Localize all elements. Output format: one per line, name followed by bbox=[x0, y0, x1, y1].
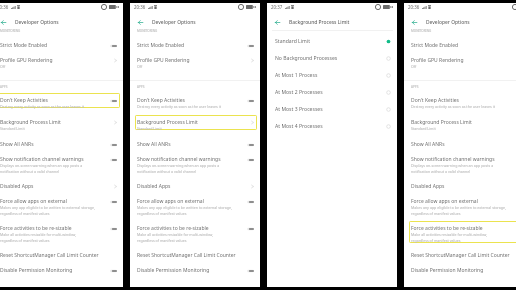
staticText: Show All ANRs bbox=[137, 141, 171, 148]
button[interactable]: Don't Keep Activities bbox=[0, 93, 123, 115]
staticText: Disable Permission Monitoring bbox=[0, 267, 73, 274]
staticText: Destroy every activity as soon as the us… bbox=[137, 104, 221, 109]
button[interactable]: Standard Limit bbox=[275, 33, 391, 50]
staticText: 20:36 bbox=[134, 4, 146, 10]
staticText: Off bbox=[411, 64, 417, 69]
staticText: Background Process Limit bbox=[0, 119, 61, 126]
staticText: Disable Permission Monitoring bbox=[137, 267, 210, 274]
staticText: Background Process Limit bbox=[137, 119, 198, 126]
button[interactable]: Back bbox=[412, 20, 417, 25]
button[interactable]: Back bbox=[275, 20, 280, 25]
staticText: APPS bbox=[411, 85, 419, 89]
button[interactable]: Background Process Limit bbox=[0, 115, 123, 137]
button[interactable]: Background Process Limit bbox=[404, 115, 516, 137]
button[interactable]: Back bbox=[1, 20, 6, 25]
staticText: Profile GPU Rendering bbox=[137, 57, 190, 64]
button[interactable]: Strict Mode Enabled bbox=[0, 38, 123, 53]
button[interactable]: Disable Permission Monitoring bbox=[0, 263, 123, 278]
staticText: Show notification channel warnings bbox=[411, 156, 495, 163]
button[interactable]: Profile GPU Rendering bbox=[0, 53, 123, 75]
staticText: Makes any app eligible to be written to … bbox=[411, 205, 506, 216]
staticText: Background Process Limit bbox=[411, 119, 472, 126]
button[interactable]: Background Process Limit bbox=[130, 115, 260, 137]
staticText: 20:37 bbox=[271, 4, 283, 10]
button[interactable]: Profile GPU Rendering bbox=[404, 53, 516, 75]
staticText: 20:36 bbox=[408, 4, 420, 10]
button[interactable]: Reset ShortcutManager Call Limit Counter bbox=[130, 248, 260, 263]
staticText: Reset ShortcutManager Call Limit Counter bbox=[411, 252, 510, 259]
button[interactable]: Strict Mode Enabled bbox=[130, 38, 260, 53]
button[interactable]: Strict Mode Enabled bbox=[404, 38, 516, 53]
button[interactable]: Don't Keep Activities bbox=[404, 93, 516, 115]
button[interactable]: At Most 1 Process bbox=[275, 67, 391, 84]
button[interactable]: Show notification channel warnings bbox=[130, 152, 260, 179]
button[interactable]: Force activities to be re-sizable bbox=[130, 221, 260, 248]
button[interactable]: Reset ShortcutManager Call Limit Counter bbox=[0, 248, 123, 263]
staticText: Developer Options bbox=[15, 19, 59, 26]
staticText: Displays on-screen warning when an app p… bbox=[137, 163, 220, 174]
button[interactable]: Disabled Apps bbox=[404, 179, 516, 194]
other: Back bbox=[275, 20, 280, 25]
staticText: Displays on-screen warning when an app p… bbox=[411, 163, 494, 174]
staticText: Strict Mode Enabled bbox=[0, 42, 48, 49]
button[interactable]: At Most 4 Processes bbox=[275, 118, 391, 135]
staticText: Don't Keep Activities bbox=[411, 97, 459, 104]
staticText: Force allow apps on external bbox=[137, 198, 204, 205]
button[interactable]: Disabled Apps bbox=[130, 179, 260, 194]
staticText: Show All ANRs bbox=[0, 141, 34, 148]
staticText: Destroy every activity as soon as the us… bbox=[411, 104, 495, 109]
staticText: Developer Options bbox=[426, 19, 470, 26]
button[interactable]: Force allow apps on external bbox=[404, 194, 516, 221]
button[interactable]: Show All ANRs bbox=[404, 137, 516, 152]
staticText: Don't Keep Activities bbox=[0, 97, 48, 104]
staticText: Disabled Apps bbox=[137, 183, 171, 190]
staticText: Displays on-screen warning when an app p… bbox=[0, 163, 83, 174]
staticText: Force activities to be re-sizable bbox=[137, 225, 209, 232]
other: Back bbox=[138, 20, 143, 25]
staticText: Show All ANRs bbox=[411, 141, 445, 148]
staticText: Makes any app eligible to be written to … bbox=[0, 205, 95, 216]
staticText: Make all activities resizable for multi-… bbox=[411, 232, 488, 243]
staticText: Disabled Apps bbox=[411, 183, 445, 190]
staticText: Don't Keep Activities bbox=[137, 97, 185, 104]
staticText: Force allow apps on external bbox=[0, 198, 67, 205]
button[interactable]: Force activities to be re-sizable bbox=[404, 221, 516, 248]
button[interactable]: Don't Keep Activities bbox=[130, 93, 260, 115]
staticText: Profile GPU Rendering bbox=[0, 57, 53, 64]
staticText: Standard Limit bbox=[0, 126, 25, 131]
button[interactable]: Force allow apps on external bbox=[0, 194, 123, 221]
staticText: MONITORING bbox=[411, 29, 432, 33]
button[interactable]: Show All ANRs bbox=[130, 137, 260, 152]
staticText: MONITORING bbox=[137, 29, 158, 33]
button[interactable]: Reset ShortcutManager Call Limit Counter bbox=[404, 248, 516, 263]
button[interactable]: Show All ANRs bbox=[0, 137, 123, 152]
staticText: Make all activities resizable for multi-… bbox=[137, 232, 214, 243]
button[interactable]: At Most 2 Processes bbox=[275, 84, 391, 101]
button[interactable]: Show notification channel warnings bbox=[404, 152, 516, 179]
staticText: 20:36 bbox=[0, 4, 9, 10]
staticText: Show notification channel warnings bbox=[0, 156, 84, 163]
staticText: At Most 2 Processes bbox=[275, 89, 386, 96]
staticText: Show notification channel warnings bbox=[137, 156, 221, 163]
staticText: APPS bbox=[137, 85, 145, 89]
staticText: Makes any app eligible to be written to … bbox=[137, 205, 232, 216]
button[interactable]: Disabled Apps bbox=[0, 179, 123, 194]
other: Back bbox=[1, 20, 6, 25]
staticText: Make all activities resizable for multi-… bbox=[0, 232, 77, 243]
staticText: Off bbox=[0, 64, 6, 69]
button[interactable]: Disable Permission Monitoring bbox=[130, 263, 260, 278]
staticText: Force activities to be re-sizable bbox=[0, 225, 72, 232]
button[interactable]: Disable Permission Monitoring bbox=[404, 263, 516, 278]
button[interactable]: Back bbox=[138, 20, 143, 25]
button[interactable]: Force allow apps on external bbox=[130, 194, 260, 221]
staticText: Standard Limit bbox=[411, 126, 436, 131]
button[interactable]: Profile GPU Rendering bbox=[130, 53, 260, 75]
staticText: No Background Processes bbox=[275, 55, 386, 62]
button[interactable]: No Background Processes bbox=[275, 50, 391, 67]
button[interactable]: Force activities to be re-sizable bbox=[0, 221, 123, 248]
button[interactable]: At Most 3 Processes bbox=[275, 101, 391, 118]
button[interactable]: Show notification channel warnings bbox=[0, 152, 123, 179]
staticText: Off bbox=[137, 64, 143, 69]
staticText: APPS bbox=[0, 85, 8, 89]
staticText: Profile GPU Rendering bbox=[411, 57, 464, 64]
